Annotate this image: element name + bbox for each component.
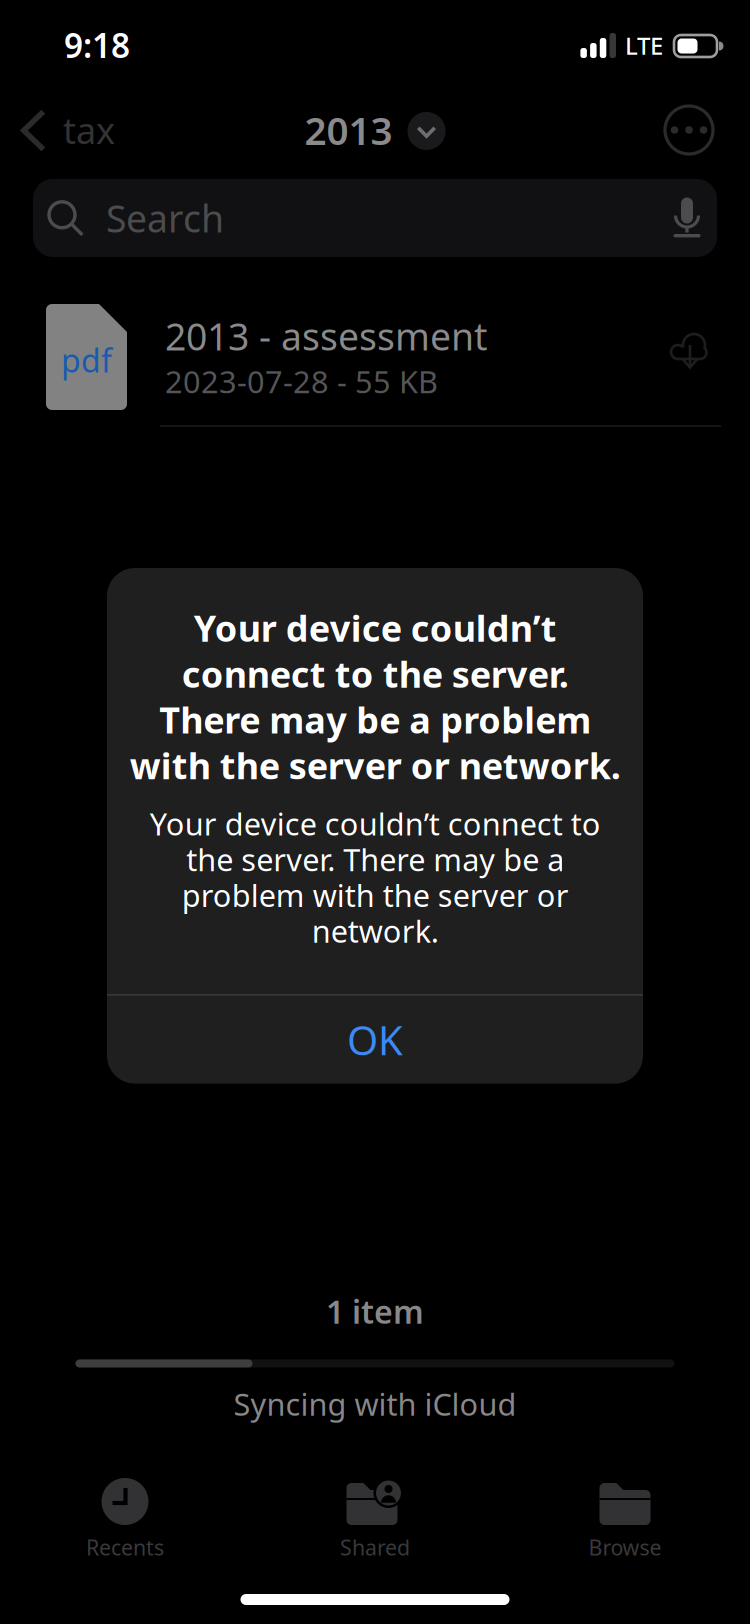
staticText: Your device couldn’t connect to the serv…	[149, 803, 600, 951]
button[interactable]: Search	[33, 179, 717, 257]
staticText: 9:18	[64, 23, 130, 67]
staticText: Your device couldn’t connect to the serv…	[129, 604, 620, 789]
staticText: Shared	[340, 1533, 410, 1561]
button[interactable]: More	[665, 92, 750, 166]
button[interactable]: Shared	[250, 1478, 500, 1561]
staticText: OK	[347, 1013, 403, 1066]
staticText: Syncing with iCloud	[233, 1383, 516, 1424]
staticText: Browse	[588, 1533, 661, 1561]
staticText: pdf	[61, 339, 112, 381]
staticText: Recents	[86, 1533, 164, 1561]
button[interactable]: tax	[0, 92, 135, 166]
staticText: 2013 - assessment	[165, 311, 487, 361]
staticText: 1 item	[326, 1290, 424, 1332]
staticText: tax	[63, 106, 115, 154]
button[interactable]: OK	[107, 996, 643, 1084]
staticText: 2013	[304, 104, 392, 156]
button[interactable]: Browse	[500, 1478, 750, 1561]
staticText: Search	[106, 193, 224, 243]
staticText: 2023-07-28 - 55 KB	[165, 361, 438, 402]
button[interactable]: pdf	[0, 300, 750, 427]
staticText: LTE	[625, 30, 663, 61]
button[interactable]: 2013	[304, 92, 445, 166]
button[interactable]: Recents	[0, 1478, 250, 1561]
